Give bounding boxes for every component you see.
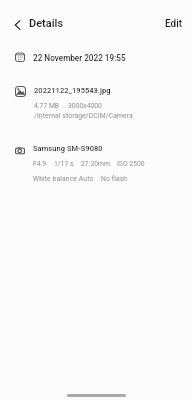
button[interactable]: Edit bbox=[160, 15, 188, 33]
staticText: Edit bbox=[165, 18, 183, 30]
staticText: 20221122_195543.jpg bbox=[34, 86, 111, 95]
staticText: 3000x4000 bbox=[68, 102, 102, 110]
staticText: F4.9 bbox=[33, 160, 47, 168]
staticText: ISO 2500 bbox=[117, 160, 145, 168]
staticText: 22 November 2022 19:55 bbox=[33, 53, 126, 63]
staticText: No flash bbox=[101, 175, 128, 183]
staticText: Details bbox=[29, 17, 64, 30]
staticText: White balance Auto bbox=[33, 175, 94, 183]
button[interactable]: 22 November 2022 19:55 bbox=[0, 46, 193, 66]
staticText: Samsung SM-S9080 bbox=[33, 144, 103, 153]
staticText: /Internal storage/DCIM/Camera bbox=[34, 112, 133, 120]
button[interactable]: Samsung SM-S9080 bbox=[0, 141, 193, 187]
staticText: 27.20mm bbox=[81, 160, 110, 168]
staticText: 1/17 s bbox=[54, 160, 74, 168]
button[interactable]: Back bbox=[7, 14, 28, 35]
button[interactable]: 20221122_195543.jpg bbox=[0, 82, 193, 128]
staticText: 4.77 MB bbox=[34, 102, 60, 110]
